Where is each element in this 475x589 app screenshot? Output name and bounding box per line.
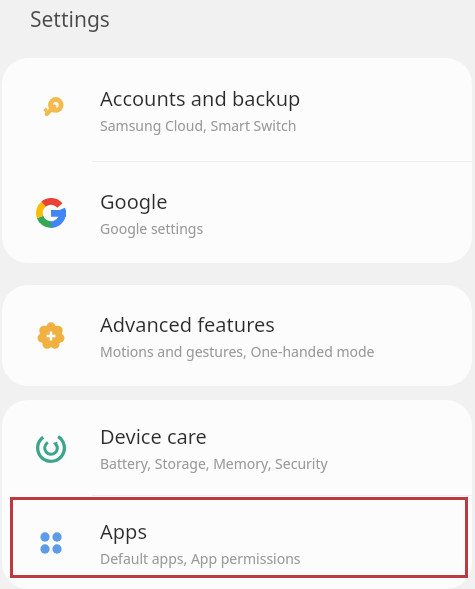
staticText: Accounts and backup bbox=[100, 85, 301, 112]
button[interactable]: Apps bbox=[2, 496, 472, 589]
staticText: Settings bbox=[30, 5, 110, 34]
staticText: Device care bbox=[100, 423, 207, 450]
button[interactable]: Device care bbox=[2, 400, 472, 495]
staticText: Motions and gestures, One-handed mode bbox=[100, 342, 375, 361]
staticText: Default apps, App permissions bbox=[100, 549, 301, 568]
other: Google bbox=[36, 198, 66, 228]
other: Accounts and backup bbox=[36, 95, 66, 125]
staticText: Samsung Cloud, Smart Switch bbox=[100, 116, 297, 135]
other: Device care bbox=[36, 433, 66, 463]
other: Advanced features bbox=[36, 321, 66, 351]
staticText: Google settings bbox=[100, 219, 204, 238]
staticText: Apps bbox=[100, 518, 147, 545]
staticText: Battery, Storage, Memory, Security bbox=[100, 454, 328, 473]
button[interactable]: Accounts and backup bbox=[2, 58, 472, 161]
other: Apps bbox=[36, 528, 66, 558]
staticText: Advanced features bbox=[100, 311, 275, 338]
button[interactable]: Advanced features bbox=[2, 285, 472, 386]
button[interactable]: Google bbox=[2, 162, 472, 263]
staticText: Google bbox=[100, 188, 168, 215]
